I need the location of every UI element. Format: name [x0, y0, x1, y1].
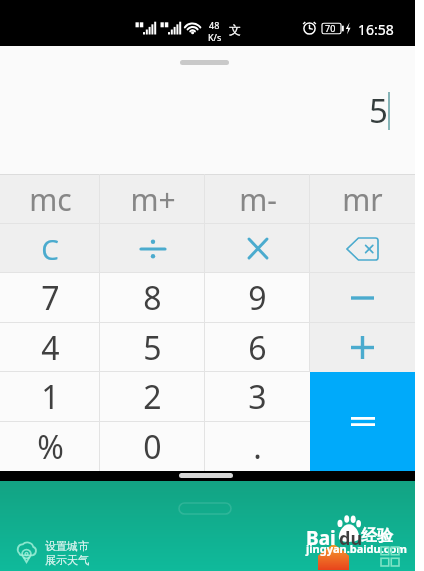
staticText: . [253, 425, 262, 469]
staticText: 16:58 [358, 20, 394, 39]
staticText: mr [342, 179, 383, 220]
button[interactable]: Minus [310, 273, 415, 323]
button[interactable]: Divide [100, 224, 205, 273]
staticText: m- [239, 179, 277, 220]
button[interactable]: 3 [205, 372, 310, 422]
staticText: 文 [229, 22, 241, 37]
staticText: 3 [248, 375, 267, 419]
staticText: 2 [143, 375, 162, 419]
button[interactable]: 1 [0, 372, 100, 422]
button[interactable]: . [205, 422, 310, 471]
button[interactable]: Plus [310, 323, 415, 372]
button[interactable]: mc [0, 174, 100, 224]
staticText: 8 [143, 276, 162, 320]
staticText: % [37, 425, 64, 469]
button[interactable]: 5 [100, 323, 205, 372]
button[interactable]: mr [310, 174, 415, 224]
staticText: 5 [143, 326, 162, 370]
button[interactable]: 8 [100, 273, 205, 323]
button[interactable]: m+ [100, 174, 205, 224]
button[interactable]: C [0, 224, 100, 273]
staticText: 设置城市 [45, 539, 89, 553]
staticText: 7 [41, 276, 60, 320]
button[interactable]: Multiply [205, 224, 310, 273]
staticText: Bai [306, 525, 336, 551]
staticText: mc [29, 179, 72, 220]
button[interactable]: Equals [310, 372, 415, 471]
staticText: 48 [209, 19, 220, 31]
staticText: du [339, 526, 363, 551]
button[interactable]: 设置城市 [12, 536, 56, 564]
staticText: 70 [325, 22, 336, 34]
staticText: 9 [248, 276, 267, 320]
button[interactable]: 6 [205, 323, 310, 372]
staticText: 4 [41, 326, 60, 370]
staticText: m+ [130, 179, 176, 220]
button[interactable]: 0 [100, 422, 205, 471]
button[interactable]: Backspace [310, 224, 415, 273]
staticText: 5 [369, 88, 388, 133]
button[interactable]: 4 [0, 323, 100, 372]
staticText: C [41, 230, 59, 268]
staticText: 1 [41, 375, 60, 419]
staticText: jingyan.baidu.com [306, 541, 408, 556]
staticText: K/s [208, 31, 222, 43]
button[interactable]: m- [205, 174, 310, 224]
button[interactable]: 2 [100, 372, 205, 422]
button[interactable]: 9 [205, 273, 310, 323]
staticText: 6 [248, 326, 267, 370]
button[interactable]: 7 [0, 273, 100, 323]
button[interactable]: Home [179, 473, 233, 478]
staticText: 0 [143, 425, 162, 469]
staticText: 展示天气 [45, 553, 89, 567]
staticText: 经验 [361, 526, 393, 546]
button[interactable]: % [0, 422, 100, 471]
